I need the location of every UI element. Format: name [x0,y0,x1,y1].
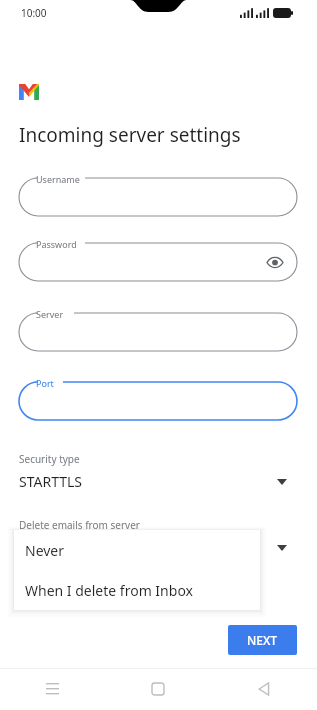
button[interactable]: Back [211,668,317,710]
staticText: Never [25,541,65,560]
button[interactable]: Recents [0,668,105,710]
button[interactable]: Server [19,313,297,351]
staticText: Password [36,238,77,250]
staticText: Port [36,377,54,389]
button[interactable]: When I delete from Inbox [14,570,260,610]
button[interactable]: Home [105,668,211,710]
button[interactable]: Never [14,530,260,570]
staticText: STARTTLS [19,472,83,491]
staticText: Username [36,173,80,185]
staticText: When I delete from Inbox [25,581,193,600]
staticText: Security type [19,452,80,466]
button[interactable]: Port [19,382,297,420]
button[interactable]: Show password [267,257,283,268]
button[interactable]: Username [19,178,297,216]
button[interactable]: Password [19,243,297,281]
button[interactable] [0,534,317,566]
staticText: Incoming server settings [19,122,241,148]
button[interactable]: STARTTLS [0,468,317,500]
staticText: NEXT [247,632,278,648]
staticText: Delete emails from server [19,518,140,532]
staticText: Server [36,308,64,320]
button[interactable]: NEXT [228,625,297,655]
staticText: 10:00 [21,6,47,20]
